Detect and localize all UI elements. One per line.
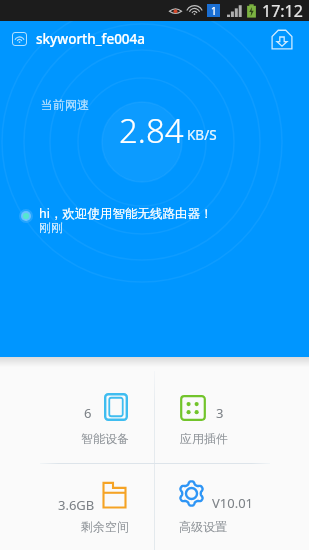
staticText: KB/S (187, 126, 217, 144)
staticText: 应用插件 (180, 431, 228, 446)
staticText: 17:12 (262, 0, 303, 21)
button[interactable]: 6 (0, 367, 154, 463)
staticText: skyworth_fe004a (36, 30, 146, 48)
staticText: V10.01 (212, 494, 254, 512)
staticText: 3 (216, 404, 224, 422)
button[interactable]: Downloads (269, 26, 295, 52)
staticText: 1 (211, 4, 217, 17)
staticText: 高级设置 (179, 519, 227, 534)
staticText: 智能设备 (81, 431, 129, 446)
button[interactable]: skyworth_fe004a (12, 30, 146, 48)
staticText: 6 (84, 404, 92, 422)
staticText: 剩余空间 (81, 519, 129, 534)
staticText: 2.84 (119, 108, 184, 153)
button[interactable]: 3 (155, 367, 309, 463)
button[interactable]: V10.01 (155, 464, 309, 550)
staticText: 当前网速 (41, 97, 89, 112)
staticText: 3.6GB (58, 496, 95, 514)
staticText: 刚刚 (39, 220, 63, 235)
staticText: hi，欢迎使用智能无线路由器！ (39, 205, 213, 222)
button[interactable]: 3.6GB (0, 464, 154, 550)
